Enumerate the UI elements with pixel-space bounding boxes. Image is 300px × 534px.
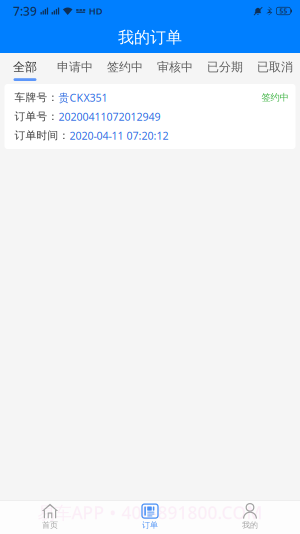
staticText: HD xyxy=(89,5,103,17)
staticText: 订单号： xyxy=(14,110,58,123)
staticText: 签约中 xyxy=(261,92,288,103)
staticText: 2020-04-11 07:20:12 xyxy=(69,128,168,143)
staticText: 7:39 xyxy=(13,3,37,19)
button[interactable]: 已分期 xyxy=(200,53,250,84)
staticText: 首页 xyxy=(42,520,58,530)
staticText: 我的 xyxy=(242,520,258,530)
staticText: 车牌号： xyxy=(14,91,58,104)
button[interactable]: 订单 xyxy=(100,500,200,534)
staticText: 55 xyxy=(279,7,287,15)
staticText: 易车APP • 400-891800.COM xyxy=(37,501,262,524)
button[interactable]: 我的 xyxy=(200,500,300,534)
button[interactable]: 车牌号： xyxy=(0,84,300,149)
staticText: 审核中 xyxy=(157,60,193,74)
button[interactable]: 审核中 xyxy=(150,53,200,84)
button[interactable]: 全部 xyxy=(0,53,50,84)
button[interactable]: 已取消 xyxy=(250,53,300,84)
staticText: 申请中 xyxy=(57,60,93,74)
button[interactable]: 首页 xyxy=(0,500,100,534)
staticText: 订单时间： xyxy=(14,129,69,142)
button[interactable]: 签约中 xyxy=(100,53,150,84)
staticText: 已分期 xyxy=(207,60,243,74)
staticText: 20200411072012949 xyxy=(58,109,160,124)
staticText: 签约中 xyxy=(107,60,143,74)
staticText: 订单 xyxy=(142,520,158,530)
staticText: 贵CKX351 xyxy=(58,90,107,105)
staticText: 我的订单 xyxy=(118,28,182,47)
button[interactable]: 申请中 xyxy=(50,53,100,84)
staticText: 全部 xyxy=(13,60,37,74)
staticText: 已取消 xyxy=(257,60,293,74)
